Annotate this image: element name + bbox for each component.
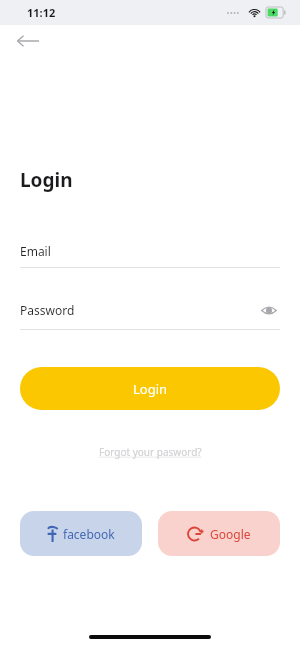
- staticText: 11:12: [27, 5, 56, 20]
- staticText: Email: [20, 243, 51, 259]
- staticText: Login: [133, 380, 168, 398]
- staticText: Login: [20, 167, 73, 193]
- button[interactable]: Password: [20, 299, 280, 330]
- staticText: Password: [20, 302, 75, 318]
- button[interactable]: Show password: [258, 299, 280, 321]
- button[interactable]: Google: [158, 511, 280, 556]
- staticText: Forgot your pasword?: [99, 445, 202, 459]
- button[interactable]: facebook: [20, 511, 142, 556]
- button[interactable]: Email: [20, 243, 280, 268]
- button[interactable]: Login: [20, 367, 280, 410]
- staticText: Google: [210, 526, 251, 542]
- button[interactable]: Forgot your pasword?: [93, 441, 208, 463]
- button[interactable]: Back: [10, 25, 46, 57]
- staticText: facebook: [63, 526, 115, 542]
